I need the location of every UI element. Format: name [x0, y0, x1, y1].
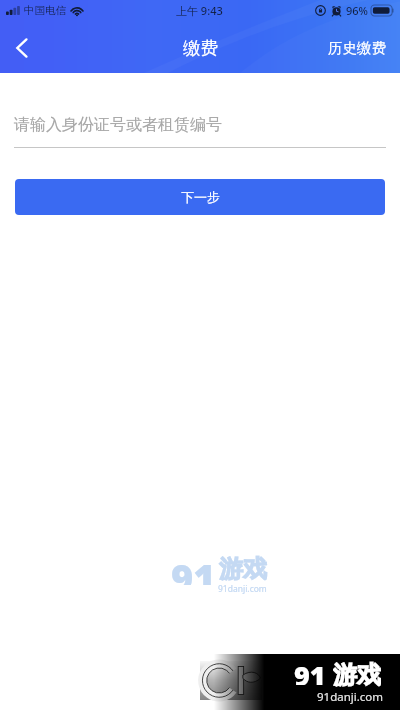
button[interactable]: 历史缴费 [314, 27, 400, 69]
staticText: 91 [171, 552, 216, 585]
staticText: 96% [346, 3, 368, 18]
staticText: 请输入身份证号或者租赁编号 [14, 115, 222, 135]
staticText: 上午 9:43 [176, 3, 223, 18]
staticText: 91danji.com [218, 583, 267, 595]
staticText: 历史缴费 [328, 39, 386, 57]
staticText: 中国电信 [24, 4, 66, 17]
staticText: 下一步 [181, 189, 220, 205]
staticText: 91danji.com [317, 689, 384, 705]
staticText: 91 [294, 657, 326, 685]
staticText: 游戏 [219, 554, 267, 584]
button[interactable]: Back [0, 27, 42, 69]
staticText: 缴费 [183, 37, 218, 59]
staticText: 游戏 [333, 660, 381, 688]
button[interactable]: 下一步 [15, 179, 385, 215]
